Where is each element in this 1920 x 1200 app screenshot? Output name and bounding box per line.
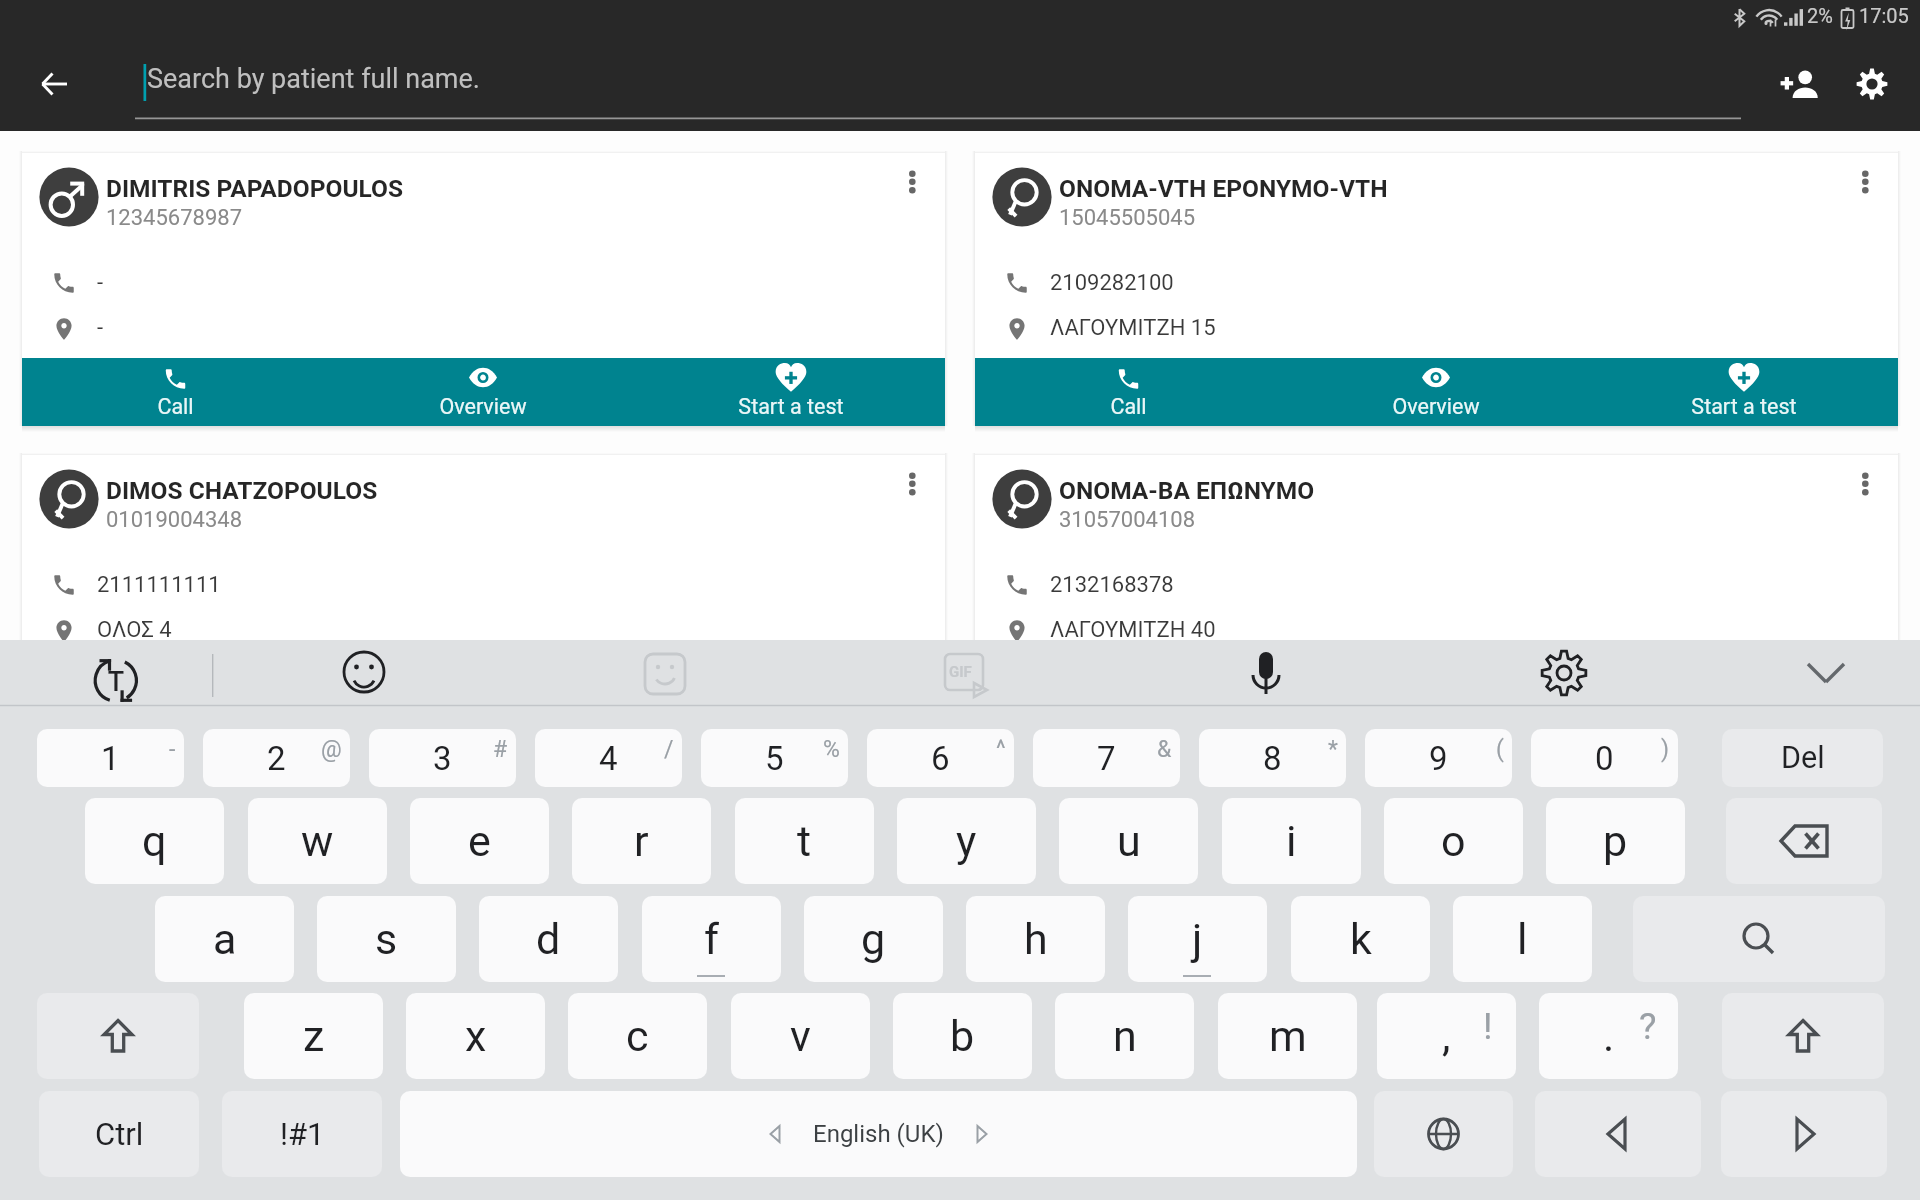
staticText: c [626, 1011, 649, 1061]
staticText: 7 [1097, 739, 1116, 778]
button[interactable]: 7 [1033, 729, 1180, 787]
button[interactable]: 4 [535, 729, 682, 787]
staticText: @ [321, 736, 342, 763]
button[interactable]: Call [22, 358, 329, 426]
staticText: 0 [1595, 739, 1614, 778]
button[interactable]: Keyboard settings [1534, 649, 1594, 709]
button[interactable]: 1 [37, 729, 184, 787]
button[interactable]: Back [22, 52, 86, 116]
button[interactable]: Shift [37, 993, 199, 1079]
button[interactable]: Move cursor left [1535, 1091, 1701, 1177]
button[interactable]: DIMOS CHATZOPOULOS [22, 455, 945, 662]
button[interactable]: English (UK) [400, 1091, 1357, 1177]
button[interactable]: k [1291, 896, 1430, 982]
button[interactable]: x [406, 993, 545, 1079]
button[interactable]: 0 [1531, 729, 1678, 787]
button[interactable]: Call [975, 358, 1282, 426]
staticText: p [1603, 816, 1628, 866]
button[interactable]: ONOMA-VTH EPONYMO-VTH [975, 153, 1898, 426]
button[interactable]: p [1546, 798, 1685, 884]
staticText: 8 [1263, 739, 1282, 778]
button[interactable]: DIMITRIS PAPADOPOULOS [22, 153, 945, 426]
button[interactable]: n [1055, 993, 1194, 1079]
button[interactable]: z [244, 993, 383, 1079]
button[interactable]: 2 [203, 729, 350, 787]
button[interactable]: g [804, 896, 943, 982]
button[interactable]: e [410, 798, 549, 884]
button[interactable]: u [1059, 798, 1198, 884]
button[interactable]: 5 [701, 729, 848, 787]
button[interactable]: q [85, 798, 224, 884]
button[interactable]: Call [22, 660, 329, 662]
button[interactable]: Ctrl [39, 1091, 199, 1177]
button[interactable]: More options [888, 160, 936, 208]
button[interactable]: d [479, 896, 618, 982]
button[interactable]: More options [1841, 160, 1889, 208]
staticText: ΟΛΟΣ 4 [97, 617, 172, 643]
button[interactable]: Language [1374, 1091, 1513, 1177]
button[interactable]: 9 [1365, 729, 1512, 787]
button[interactable]: Shift [1722, 993, 1884, 1079]
staticText: . [1603, 1011, 1615, 1061]
button[interactable]: i [1222, 798, 1361, 884]
button[interactable]: Start a test [637, 660, 945, 662]
staticText: / [664, 736, 674, 763]
button[interactable]: Hide keyboard [1796, 649, 1856, 709]
button[interactable]: b [893, 993, 1032, 1079]
button[interactable]: w [248, 798, 387, 884]
button[interactable]: Backspace [1726, 798, 1882, 884]
button[interactable]: !#1 [222, 1091, 382, 1177]
button[interactable]: , [1377, 993, 1516, 1079]
button[interactable]: Overview [329, 358, 637, 426]
staticText: g [861, 914, 886, 964]
button[interactable]: Overview [1282, 660, 1590, 662]
button[interactable]: f [642, 896, 781, 982]
button[interactable]: m [1218, 993, 1357, 1079]
button[interactable]: More options [888, 462, 936, 510]
staticText: o [1441, 816, 1466, 866]
staticText: # [493, 736, 508, 763]
button[interactable]: v [731, 993, 870, 1079]
button[interactable]: r [572, 798, 711, 884]
button[interactable]: Settings [1844, 56, 1900, 112]
button[interactable]: 8 [1199, 729, 1346, 787]
staticText: 2132168378 [1050, 572, 1174, 598]
button[interactable]: Overview [1282, 358, 1590, 426]
button[interactable]: GIF [939, 651, 999, 711]
button[interactable]: Move cursor right [1721, 1091, 1887, 1177]
button[interactable]: Overview [329, 660, 637, 662]
button[interactable]: c [568, 993, 707, 1079]
button[interactable]: Search [1633, 896, 1885, 982]
button[interactable]: h [966, 896, 1105, 982]
button[interactable]: Add patient [1772, 56, 1828, 112]
button[interactable]: Call [975, 660, 1282, 662]
button[interactable]: l [1453, 896, 1592, 982]
button[interactable]: j [1128, 896, 1267, 982]
button[interactable]: Start a test [1590, 358, 1898, 426]
button[interactable]: More options [1841, 462, 1889, 510]
button[interactable]: Emoji [334, 649, 394, 709]
button[interactable]: 3 [369, 729, 516, 787]
button[interactable]: a [155, 896, 294, 982]
button[interactable]: 6 [867, 729, 1014, 787]
staticText: DIMOS CHATZOPOULOS [106, 476, 378, 505]
button[interactable]: y [897, 798, 1036, 884]
button[interactable]: Translate [86, 648, 146, 698]
staticText: ΛΑΓΟΥΜΙΤΖΗ 15 [1050, 315, 1216, 341]
button[interactable]: Start a test [637, 358, 945, 426]
staticText: v [790, 1011, 811, 1061]
button[interactable]: Voice input [1236, 649, 1296, 709]
button[interactable]: Del [1722, 729, 1883, 787]
staticText: GIF [949, 663, 972, 681]
button[interactable]: Stickers [635, 651, 695, 711]
button[interactable]: ONOMA-ΒΑ ΕΠΩΝΥΜΟ [975, 455, 1898, 662]
button[interactable]: s [317, 896, 456, 982]
button[interactable]: o [1384, 798, 1523, 884]
button[interactable]: Search by patient full name. [135, 46, 1741, 120]
button[interactable]: t [735, 798, 874, 884]
staticText: i [1286, 816, 1297, 866]
button[interactable]: . [1539, 993, 1678, 1079]
